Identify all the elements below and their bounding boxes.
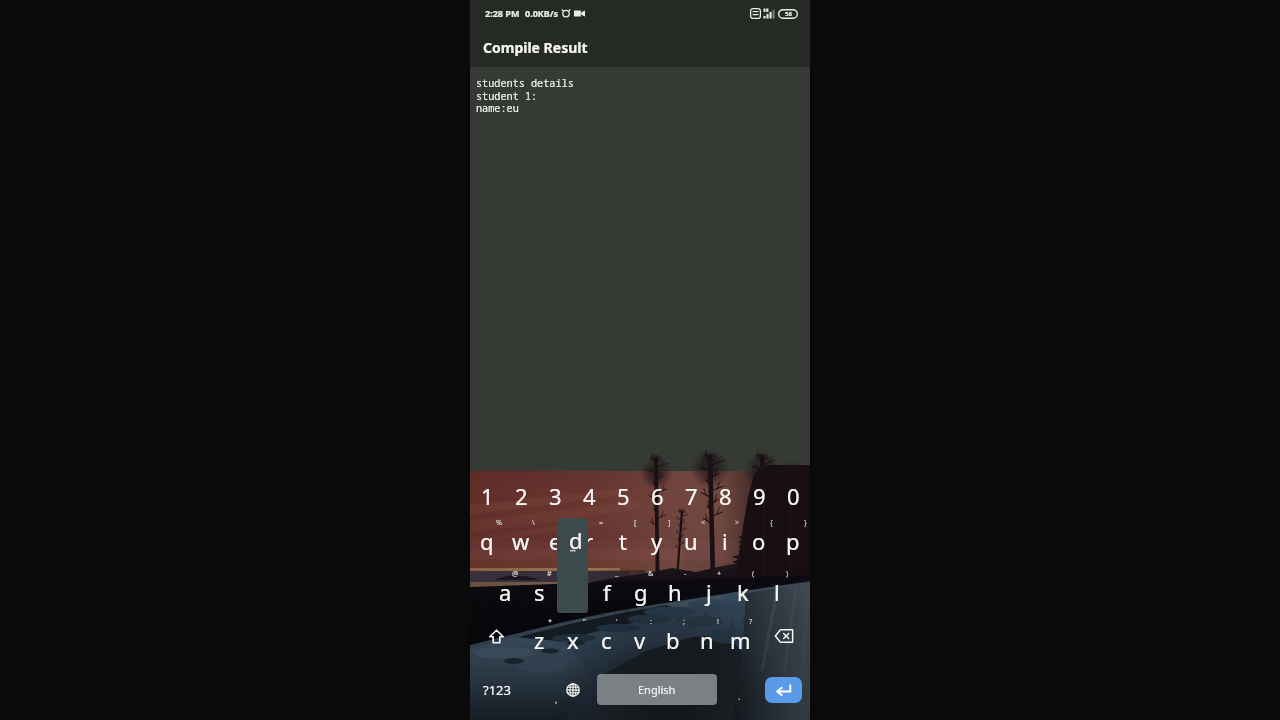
button[interactable]: v: [623, 616, 657, 656]
staticText: 5: [617, 481, 630, 511]
button[interactable]: z: [522, 616, 556, 656]
button[interactable]: e: [538, 517, 572, 557]
staticText: ;: [683, 616, 685, 626]
staticText: ': [616, 616, 618, 626]
staticText: |: [565, 517, 569, 527]
staticText: x: [567, 625, 579, 655]
button[interactable]: 6: [640, 477, 674, 515]
button[interactable]: n: [690, 616, 724, 656]
staticText: p: [786, 526, 800, 556]
staticText: Compile Result: [483, 38, 588, 57]
staticText: }: [804, 517, 807, 527]
staticText: *: [548, 616, 552, 626]
staticText: {: [770, 517, 773, 527]
staticText: ": [583, 616, 586, 626]
button[interactable]: 0: [776, 477, 810, 515]
staticText: 7: [685, 481, 698, 511]
button[interactable]: d: [556, 568, 590, 608]
staticText: w: [512, 526, 530, 556]
staticText: English: [638, 682, 676, 697]
button[interactable]: Backspace: [757, 616, 810, 656]
staticText: 8: [719, 481, 732, 511]
button[interactable]: h: [658, 568, 692, 608]
staticText: o: [752, 526, 766, 556]
staticText: q: [480, 526, 494, 556]
button[interactable]: 8: [708, 477, 742, 515]
button[interactable]: 5: [606, 477, 640, 515]
button[interactable]: Change language: [554, 670, 591, 710]
staticText: 9: [753, 481, 766, 511]
staticText: %: [496, 517, 502, 527]
button[interactable]: Shift: [470, 616, 522, 656]
button[interactable]: w: [504, 517, 538, 557]
button[interactable]: b: [656, 616, 690, 656]
button[interactable]: 9: [742, 477, 776, 515]
staticText: n: [700, 625, 714, 655]
button[interactable]: s: [522, 568, 556, 608]
staticText: s: [534, 577, 545, 607]
button[interactable]: m: [723, 616, 757, 656]
button[interactable]: English: [597, 674, 717, 705]
staticText: \: [532, 517, 535, 527]
staticText: 6: [651, 481, 664, 511]
button[interactable]: ?123: [474, 670, 520, 710]
staticText: >: [735, 517, 740, 527]
staticText: 2:28 PM: [485, 7, 520, 19]
staticText: +: [717, 568, 722, 578]
staticText: 1: [481, 481, 494, 511]
button[interactable]: y: [640, 517, 674, 557]
staticText: #: [547, 568, 552, 578]
staticText: j: [706, 577, 712, 607]
staticText: ?123: [483, 681, 511, 699]
staticText: @: [512, 568, 519, 578]
button[interactable]: 1: [470, 477, 504, 515]
staticText: u: [684, 526, 698, 556]
staticText: e: [549, 526, 562, 556]
staticText: .: [738, 690, 741, 702]
staticText: [: [634, 517, 637, 527]
staticText: =: [599, 517, 604, 527]
button[interactable]: t: [606, 517, 640, 557]
staticText: !: [717, 616, 719, 626]
button[interactable]: 4: [572, 477, 606, 515]
staticText: b: [666, 625, 680, 655]
button[interactable]: 2: [504, 477, 538, 515]
button[interactable]: p: [776, 517, 810, 557]
staticText: i: [722, 526, 728, 556]
staticText: &: [648, 568, 654, 578]
staticText: 58: [785, 10, 792, 18]
button[interactable]: 3: [538, 477, 572, 515]
button[interactable]: c: [589, 616, 623, 656]
button[interactable]: 7: [674, 477, 708, 515]
button[interactable]: r: [572, 517, 606, 557]
staticText: :: [650, 616, 652, 626]
button[interactable]: a: [488, 568, 522, 608]
staticText: 0: [787, 481, 800, 511]
button[interactable]: q: [470, 517, 504, 557]
button[interactable]: u: [674, 517, 708, 557]
staticText: ?: [749, 616, 753, 626]
button[interactable]: l: [760, 568, 794, 608]
button[interactable]: k: [726, 568, 760, 608]
button[interactable]: g: [624, 568, 658, 608]
button[interactable]: i: [708, 517, 742, 557]
staticText: 2: [515, 481, 528, 511]
staticText: g: [634, 577, 648, 607]
staticText: <: [701, 517, 706, 527]
staticText: f: [603, 577, 611, 607]
button[interactable]: f: [590, 568, 624, 608]
button[interactable]: Enter: [765, 677, 802, 703]
staticText: z: [534, 625, 545, 655]
staticText: v: [634, 625, 646, 655]
staticText: 4: [583, 481, 596, 511]
button[interactable]: j: [692, 568, 726, 608]
staticText: r: [584, 526, 594, 556]
staticText: a: [499, 577, 512, 607]
staticText: d: [569, 525, 583, 555]
staticText: 0.0KB/s: [525, 7, 559, 19]
button[interactable]: o: [742, 517, 776, 557]
button[interactable]: x: [556, 616, 590, 656]
staticText: ]: [668, 517, 671, 527]
